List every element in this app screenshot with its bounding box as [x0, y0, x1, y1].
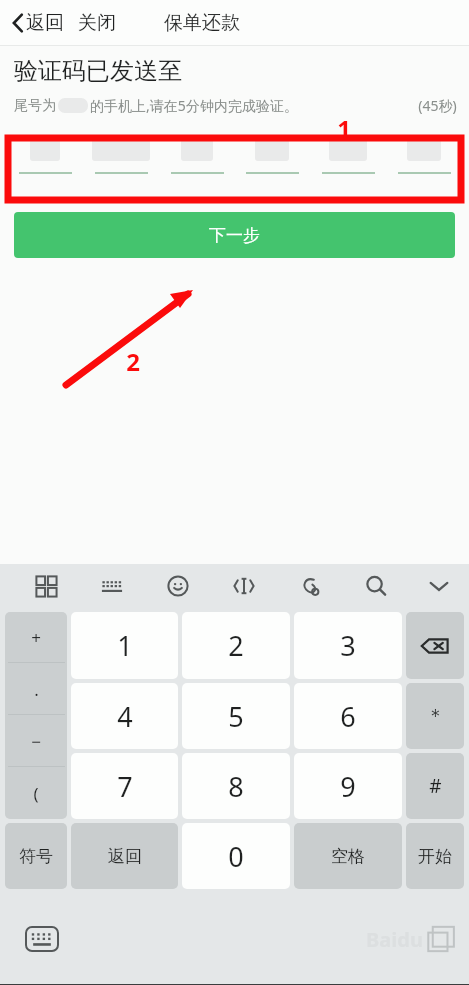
- staticText: 空格: [331, 846, 365, 867]
- button[interactable]: 3: [294, 612, 402, 679]
- button[interactable]: Text cursor: [211, 564, 277, 608]
- button[interactable]: .: [5, 663, 67, 715]
- button[interactable]: Keyboard layout: [79, 564, 145, 608]
- staticText: 7: [117, 768, 133, 805]
- staticText: 符号: [19, 846, 53, 867]
- button[interactable]: 空格: [294, 823, 402, 889]
- staticText: +: [31, 626, 41, 649]
- button[interactable]: 8: [182, 753, 290, 819]
- button[interactable]: 返回: [71, 823, 178, 889]
- button[interactable]: [241, 137, 303, 174]
- button[interactable]: [317, 137, 379, 174]
- button[interactable]: Hide keyboard: [409, 564, 469, 608]
- staticText: (: [33, 782, 39, 805]
- button[interactable]: #: [406, 753, 464, 819]
- staticText: 返回: [26, 11, 64, 35]
- button[interactable]: Search: [343, 564, 409, 608]
- staticText: #: [429, 773, 442, 799]
- button[interactable]: 7: [71, 753, 178, 819]
- staticText: 2: [126, 345, 140, 378]
- button[interactable]: Backspace: [406, 612, 464, 679]
- staticText: 开始: [418, 846, 452, 867]
- button[interactable]: ＊: [406, 683, 464, 749]
- staticText: 尾号为: [14, 97, 56, 115]
- button[interactable]: Keyboard settings: [22, 923, 62, 955]
- staticText: 9: [340, 768, 356, 805]
- button[interactable]: 1: [71, 612, 178, 679]
- button[interactable]: [90, 137, 152, 174]
- button[interactable]: 5: [182, 683, 290, 749]
- button[interactable]: 0: [182, 823, 290, 889]
- staticText: 6: [340, 698, 356, 735]
- staticText: ＊: [426, 704, 445, 728]
- staticText: (45秒): [418, 96, 457, 115]
- button[interactable]: (: [5, 767, 67, 819]
- staticText: 3: [340, 627, 356, 664]
- staticText: Baidu: [366, 926, 423, 953]
- button[interactable]: 6: [294, 683, 402, 749]
- staticText: 1: [337, 112, 351, 145]
- button[interactable]: [14, 137, 76, 174]
- staticText: 2: [228, 627, 244, 664]
- staticText: 4: [117, 698, 133, 735]
- staticText: 0: [228, 838, 244, 875]
- button[interactable]: 4: [71, 683, 178, 749]
- button[interactable]: 开始: [406, 823, 464, 889]
- staticText: −: [31, 730, 41, 753]
- staticText: 验证码已发送至: [14, 56, 182, 86]
- button[interactable]: Clipboard: [277, 564, 343, 608]
- button[interactable]: [393, 137, 455, 174]
- staticText: 1: [117, 627, 133, 664]
- button[interactable]: [166, 137, 228, 174]
- button[interactable]: −: [5, 715, 67, 767]
- staticText: 8: [228, 768, 244, 805]
- button[interactable]: 关闭: [78, 11, 116, 35]
- staticText: .: [34, 678, 39, 701]
- button[interactable]: Emoji: [145, 564, 211, 608]
- staticText: 保单还款: [164, 11, 240, 35]
- staticText: 的手机上,请在5分钟内完成验证。: [90, 96, 298, 115]
- staticText: 关闭: [78, 11, 116, 35]
- button[interactable]: Grid: [12, 564, 79, 608]
- button[interactable]: +: [5, 612, 67, 663]
- staticText: 5: [228, 698, 244, 735]
- staticText: 返回: [108, 846, 142, 867]
- button[interactable]: 2: [182, 612, 290, 679]
- button[interactable]: 下一步: [14, 212, 455, 258]
- button[interactable]: 符号: [5, 823, 67, 889]
- button[interactable]: 9: [294, 753, 402, 819]
- button[interactable]: 返回: [10, 11, 64, 35]
- staticText: 下一步: [209, 225, 260, 246]
